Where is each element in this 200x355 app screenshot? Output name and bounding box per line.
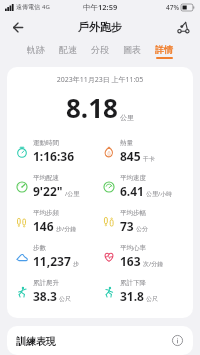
staticText: 平均步頻 [33,209,59,217]
button[interactable]: 運動時間 [15,139,102,164]
staticText: 11,237 [33,253,71,269]
button[interactable]: 軌跡 [27,44,45,59]
staticText: 平均速度 [120,174,146,182]
button[interactable]: 累計下降 [102,279,189,304]
staticText: 軌跡 [27,44,45,55]
staticText: 845 [120,148,141,164]
staticText: 8.18 [66,90,118,125]
staticText: 4G [42,3,50,11]
button[interactable]: 平均速度 [102,174,189,199]
staticText: 平均心率 [120,244,146,252]
staticText: 公尺 [59,295,71,303]
staticText: 分段 [91,44,109,55]
staticText: 步 [73,260,79,268]
staticText: 配速 [59,44,77,55]
staticText: 千卡 [143,155,155,163]
staticText: 平均步幅 [120,209,146,217]
staticText: 73 [120,218,134,234]
staticText: 公里/小時 [146,190,173,198]
staticText: 戶外跑步 [78,20,122,34]
staticText: 31.8 [120,288,144,304]
button[interactable]: 步數 [15,244,102,269]
staticText: 次/分鐘 [143,260,164,268]
button[interactable]: 熱量 [102,139,189,164]
staticText: 運動時間 [33,139,59,147]
staticText: 146 [33,218,54,234]
button[interactable]: Back [4,15,28,39]
staticText: 步/分鐘 [56,225,77,233]
button[interactable]: 平均配速 [15,174,102,199]
button[interactable]: 平均步頻 [15,209,102,234]
staticText: 公分 [136,225,148,233]
staticText: 平均配速 [33,174,59,182]
button[interactable]: 分段 [91,44,109,59]
button[interactable]: Info [170,335,184,346]
button[interactable]: 平均心率 [102,244,189,269]
staticText: 圖表 [123,44,141,55]
staticText: 38.3 [33,288,57,304]
button[interactable]: 配速 [59,44,77,59]
staticText: 累計下降 [120,279,146,287]
staticText: 熱量 [120,139,133,147]
staticText: 遠傳電信 [16,3,40,11]
staticText: 9'22" [33,183,63,199]
staticText: 47% [166,3,179,12]
button[interactable]: 累計爬升 [15,279,102,304]
staticText: 公里 [120,113,134,122]
button[interactable]: 圖表 [123,44,141,59]
staticText: /公里 [65,190,80,198]
staticText: 2023年11月23日 上午11:05 [7,75,193,85]
staticText: 累計爬升 [33,279,59,287]
staticText: 中午12:59 [83,2,118,12]
staticText: 詳情 [155,44,173,55]
staticText: 163 [120,253,141,269]
staticText: 訓練表現 [16,335,56,346]
button[interactable]: 平均步幅 [102,209,189,234]
staticText: 1:16:36 [33,148,75,164]
staticText: 步數 [33,244,46,252]
button[interactable]: 詳情 [155,44,173,59]
button[interactable]: Route [173,16,195,38]
staticText: 6.41 [120,183,144,199]
staticText: 公尺 [146,295,158,303]
